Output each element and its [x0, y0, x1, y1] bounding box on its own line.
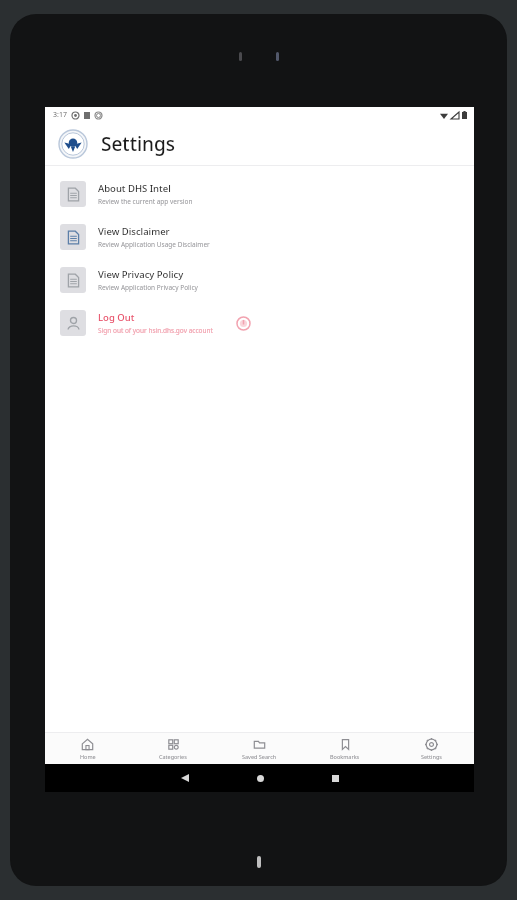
button[interactable]: View Disclaimer: [45, 215, 474, 258]
staticText: Review the current app version: [98, 197, 193, 206]
staticText: Review Application Usage Disclaimer: [98, 240, 210, 249]
button[interactable]: Saved Search: [216, 738, 302, 760]
button[interactable]: Settings: [388, 738, 474, 760]
staticText: 3:17: [53, 110, 67, 120]
button[interactable]: Categories: [130, 738, 216, 760]
staticText: Settings: [421, 753, 442, 760]
button[interactable]: Bookmarks: [302, 738, 388, 760]
button[interactable]: Home: [45, 738, 130, 760]
button[interactable]: View Privacy Policy: [45, 258, 474, 301]
button[interactable]: Log out: [235, 315, 251, 331]
button[interactable]: Log Out: [45, 301, 474, 344]
staticText: Categories: [159, 753, 187, 760]
staticText: Home: [80, 753, 96, 760]
staticText: Log Out: [98, 311, 135, 324]
button[interactable]: About DHS Intel: [45, 172, 474, 215]
button[interactable]: Back: [174, 767, 196, 789]
staticText: Review Application Privacy Policy: [98, 283, 198, 292]
staticText: View Privacy Policy: [98, 268, 184, 281]
staticText: Settings: [101, 131, 175, 157]
staticText: View Disclaimer: [98, 225, 170, 238]
staticText: Bookmarks: [330, 753, 360, 760]
staticText: About DHS Intel: [98, 182, 171, 195]
button[interactable]: Recents: [324, 767, 346, 789]
staticText: Sign out of your hsin.dhs.gov account: [98, 326, 213, 335]
staticText: Saved Search: [242, 753, 277, 760]
button[interactable]: Home: [249, 767, 271, 789]
